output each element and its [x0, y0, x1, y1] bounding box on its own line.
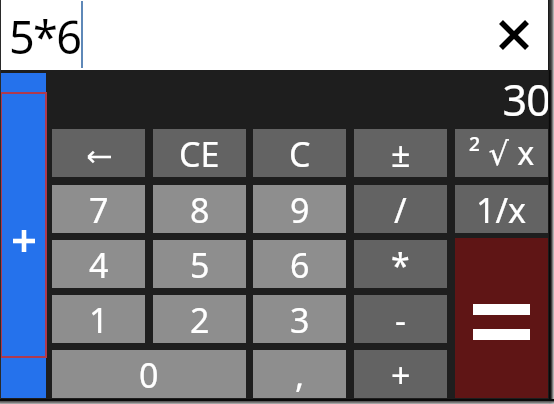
button[interactable]: -	[354, 295, 447, 343]
staticText: 0	[139, 352, 159, 398]
staticText: 1/x	[476, 187, 527, 233]
staticText: ,	[295, 352, 305, 398]
staticText: 7	[89, 187, 109, 233]
staticText: -	[395, 297, 406, 343]
staticText: CE	[179, 131, 220, 177]
button[interactable]: 5*6	[0, 0, 554, 70]
staticText: 5	[190, 242, 210, 288]
button[interactable]: Equals	[455, 238, 548, 398]
button[interactable]: 1/x	[455, 185, 548, 233]
button[interactable]: 1	[52, 295, 145, 343]
staticText: 6	[290, 242, 310, 288]
button[interactable]: 8	[153, 185, 246, 233]
staticText: 9	[290, 187, 310, 233]
button[interactable]: 6	[253, 240, 346, 288]
button[interactable]: CE	[153, 129, 246, 177]
staticText: ±	[391, 131, 411, 177]
staticText: 4	[89, 242, 109, 288]
button[interactable]: 7	[52, 185, 145, 233]
staticText: ² √ x	[469, 131, 535, 175]
staticText: 2	[190, 297, 210, 343]
button[interactable]: Clear	[492, 13, 536, 57]
staticText: +	[391, 352, 411, 398]
staticText: *	[391, 242, 410, 288]
staticText: C	[289, 131, 311, 177]
button[interactable]: 9	[253, 185, 346, 233]
button[interactable]: *	[354, 240, 447, 288]
button[interactable]: 3	[253, 295, 346, 343]
button[interactable]: Backspace	[52, 129, 145, 177]
staticText: 1	[89, 297, 109, 343]
button[interactable]: 4	[52, 240, 145, 288]
button[interactable]: ±	[354, 129, 447, 177]
button[interactable]: C	[253, 129, 346, 177]
staticText: 8	[190, 187, 210, 233]
button[interactable]: +	[354, 350, 447, 398]
staticText: 5*6	[9, 6, 81, 67]
button[interactable]	[1, 73, 46, 398]
button[interactable]: 0	[52, 350, 246, 398]
staticText: /	[394, 187, 407, 233]
button[interactable]: ,	[253, 350, 346, 398]
staticText: 30	[450, 70, 550, 129]
button[interactable]: 5	[153, 240, 246, 288]
button[interactable]: /	[354, 185, 447, 233]
staticText: 3	[290, 297, 310, 343]
button[interactable]: Square root	[455, 129, 548, 177]
button[interactable]: 2	[153, 295, 246, 343]
